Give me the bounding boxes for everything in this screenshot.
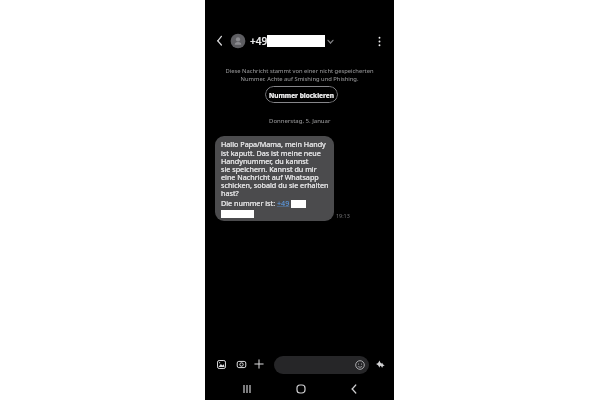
staticText: 19:13: [336, 212, 350, 219]
button[interactable]: More options: [372, 34, 387, 49]
staticText: Nummer blockieren: [269, 91, 334, 100]
button[interactable]: Gallery: [216, 359, 227, 370]
button[interactable]: Recent apps: [239, 381, 255, 397]
button[interactable]: Back: [212, 33, 227, 48]
button[interactable]: AI assist: [375, 359, 386, 370]
staticText: Hallo Papa/Mama, mein Handy ist kaputt. …: [221, 139, 329, 198]
button[interactable]: Nummer blockieren: [265, 86, 338, 103]
button[interactable]: Contact avatar: [230, 33, 246, 49]
button[interactable]: Expand contact: [325, 36, 336, 47]
staticText: Die nummer ist: +49: [221, 198, 290, 208]
staticText: +49: [250, 34, 268, 48]
button[interactable]: Add attachment: [253, 358, 265, 370]
button[interactable]: Message input: [274, 356, 369, 374]
staticText: Donnerstag, 5. Januar: [269, 117, 331, 125]
button[interactable]: Hallo Papa/Mama, mein Handy ist kaputt. …: [215, 136, 334, 221]
button[interactable]: Home: [293, 381, 309, 397]
button[interactable]: Back: [346, 381, 362, 397]
staticText: Diese Nachricht stammt von einer nicht g…: [225, 67, 374, 82]
button[interactable]: Camera: [236, 359, 247, 370]
